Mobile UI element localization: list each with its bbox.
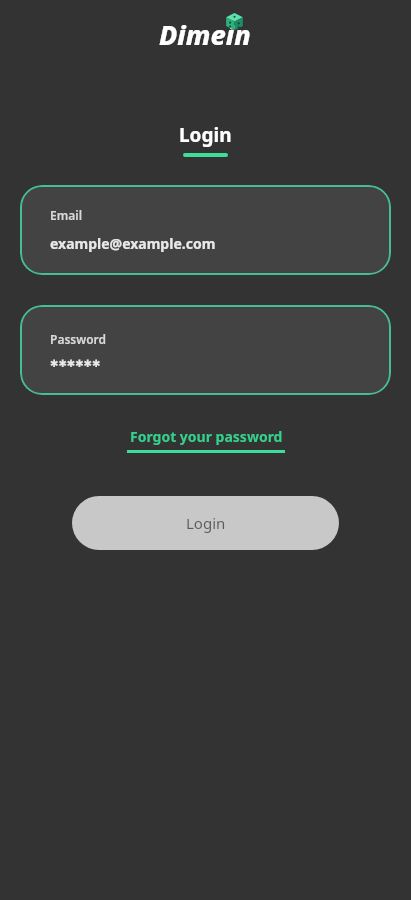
staticText: Login [179, 122, 232, 148]
staticText: Password [50, 331, 107, 347]
button[interactable]: Forgot your password [127, 427, 285, 453]
button[interactable]: Password [20, 305, 391, 395]
button[interactable]: Login [179, 122, 232, 148]
staticText: Email [50, 207, 83, 223]
staticText: Forgot your password [130, 427, 283, 446]
button[interactable]: Login [72, 496, 339, 550]
staticText: Dimein [159, 16, 251, 53]
staticText: Login [186, 513, 226, 533]
button[interactable]: Email [20, 185, 391, 275]
staticText: example@example.com [50, 234, 216, 253]
other: Dimein logo [151, 8, 261, 56]
staticText: ✱✱✱✱✱✱ [50, 358, 101, 370]
